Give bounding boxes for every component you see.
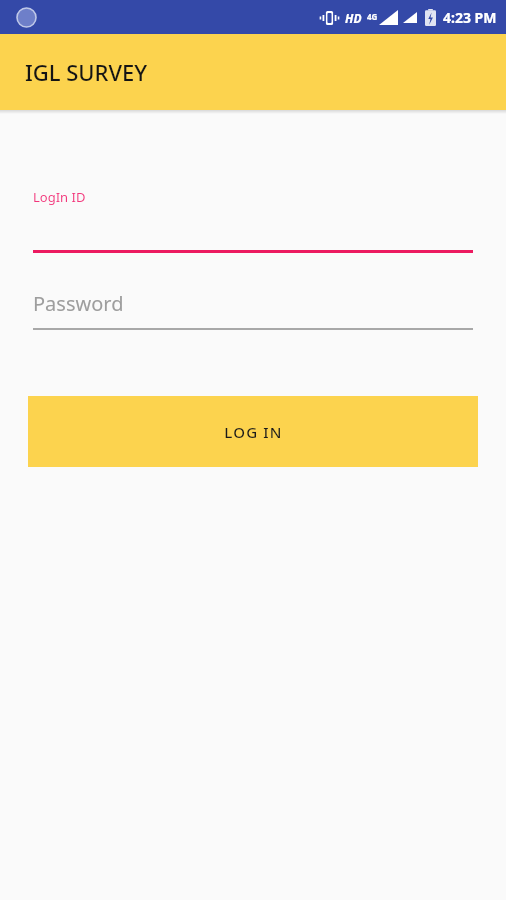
staticText: 4G (367, 11, 378, 22)
staticText: 4:23 PM (443, 8, 497, 27)
button[interactable]: Password (33, 290, 473, 330)
button[interactable]: LogIn ID (33, 188, 473, 253)
staticText: IGL SURVEY (25, 57, 148, 87)
staticText: Password (33, 290, 124, 317)
button[interactable]: LOG IN (28, 396, 478, 467)
staticText: LogIn ID (33, 188, 86, 206)
staticText: LOG IN (224, 422, 283, 442)
staticText: HD (345, 10, 362, 26)
